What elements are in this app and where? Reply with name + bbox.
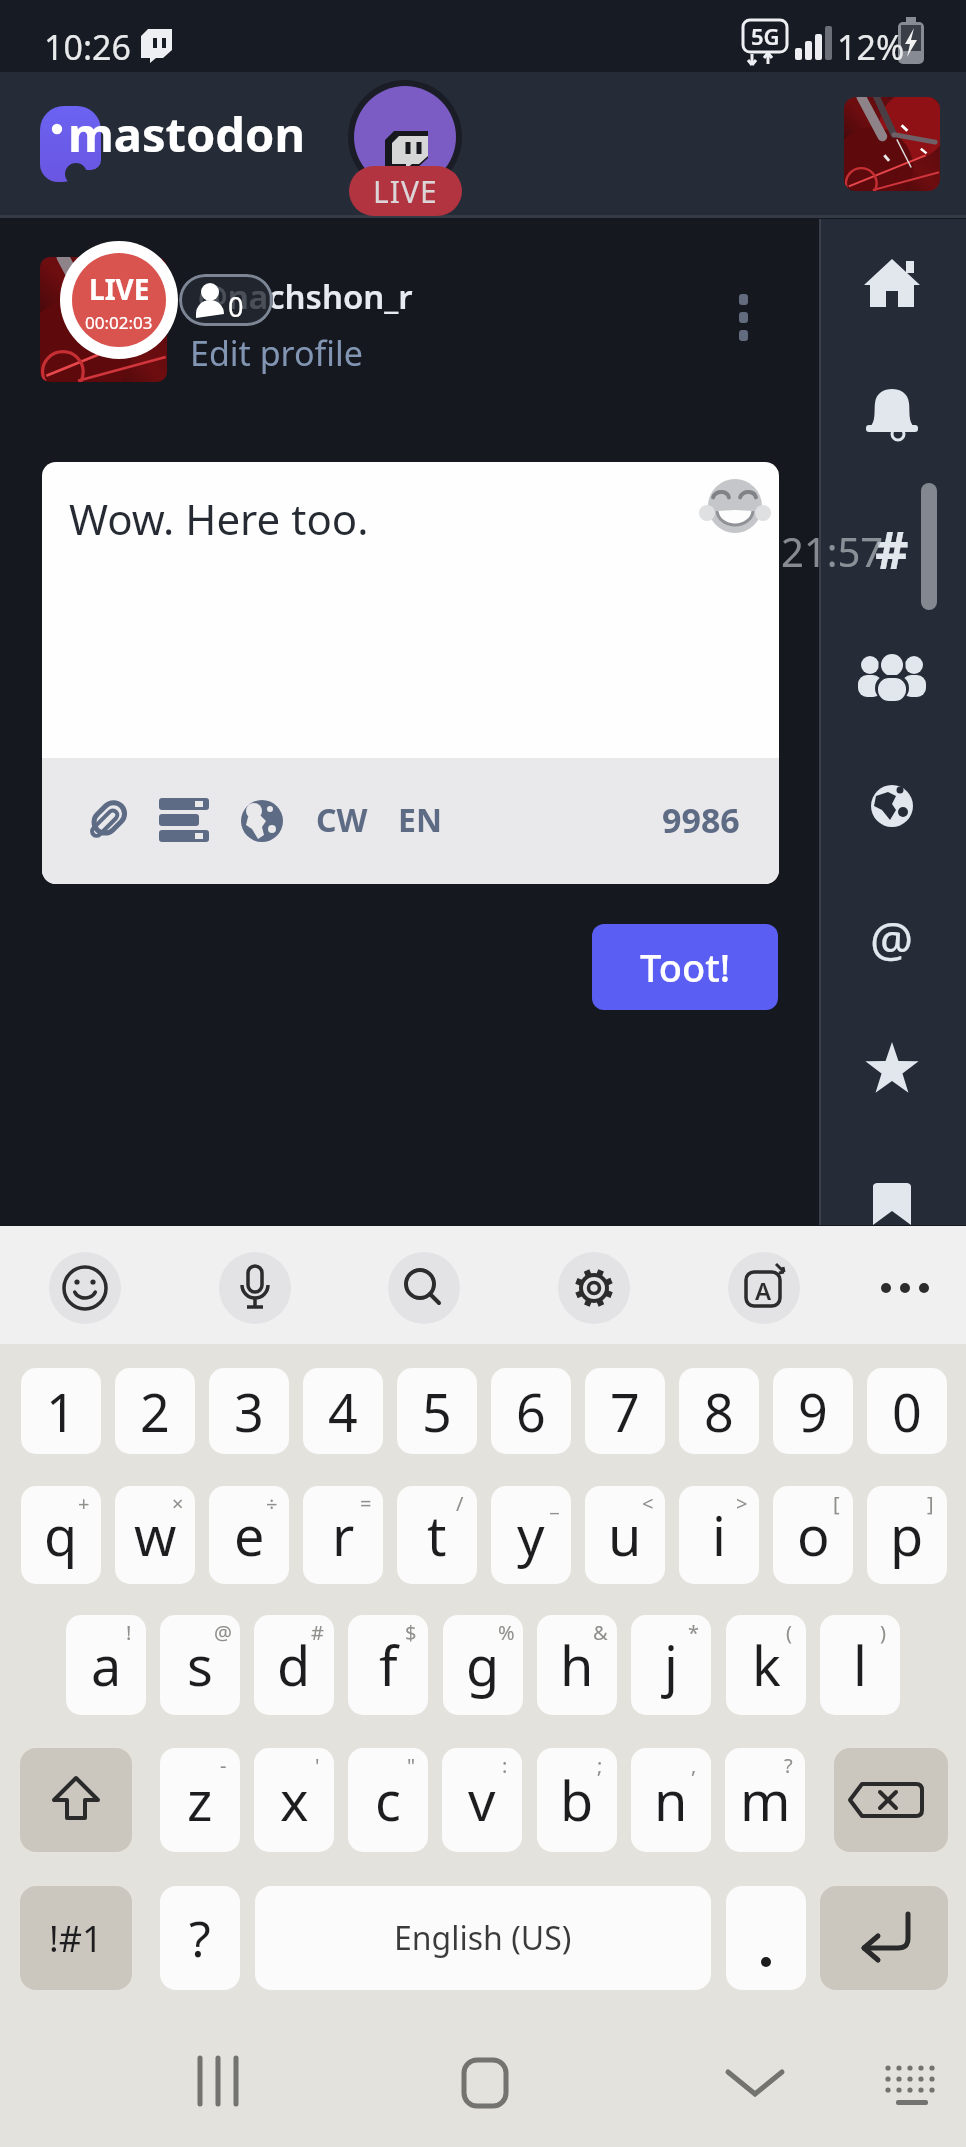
button[interactable]: Toot!: [592, 924, 778, 1010]
staticText: ': [315, 1752, 320, 1779]
button[interactable]: t: [397, 1486, 477, 1584]
button[interactable]: y: [491, 1486, 571, 1584]
button[interactable]: [820, 1886, 948, 1990]
button[interactable]: z: [160, 1748, 240, 1852]
staticText: v: [468, 1763, 496, 1837]
staticText: *: [688, 1619, 700, 1646]
button[interactable]: o: [773, 1486, 853, 1584]
button[interactable]: [690, 2030, 820, 2134]
button[interactable]: [420, 2030, 550, 2134]
button[interactable]: 9: [773, 1368, 853, 1454]
staticText: 9986: [662, 797, 740, 843]
button[interactable]: b: [537, 1748, 617, 1852]
button[interactable]: [862, 1042, 922, 1098]
button[interactable]: [219, 1252, 291, 1324]
button[interactable]: English (US): [255, 1886, 711, 1990]
button[interactable]: [150, 2030, 284, 2134]
staticText: ;: [597, 1752, 603, 1779]
button[interactable]: [852, 647, 932, 699]
button[interactable]: k: [726, 1615, 806, 1715]
button[interactable]: [728, 1252, 800, 1324]
button[interactable]: [20, 1748, 132, 1852]
button[interactable]: 2: [115, 1368, 195, 1454]
button[interactable]: !#1: [20, 1886, 132, 1990]
button[interactable]: [862, 387, 922, 439]
button[interactable]: 6: [491, 1368, 571, 1454]
button[interactable]: [40, 257, 167, 382]
button[interactable]: [844, 97, 940, 191]
button[interactable]: 1: [21, 1368, 101, 1454]
staticText: =: [360, 1490, 372, 1517]
button[interactable]: w: [115, 1486, 195, 1584]
button[interactable]: l: [820, 1615, 900, 1715]
button[interactable]: Edit profile: [190, 330, 363, 376]
button[interactable]: f: [348, 1615, 428, 1715]
button[interactable]: a: [66, 1615, 146, 1715]
staticText: u: [608, 1498, 642, 1572]
staticText: m: [740, 1763, 791, 1837]
button[interactable]: [388, 1252, 460, 1324]
button[interactable]: g: [443, 1615, 523, 1715]
button[interactable]: CW: [316, 798, 368, 842]
button[interactable]: p: [867, 1486, 947, 1584]
button[interactable]: 4: [303, 1368, 383, 1454]
staticText: 9: [798, 1376, 828, 1447]
staticText: a: [91, 1628, 122, 1702]
staticText: t: [427, 1498, 447, 1572]
staticText: $: [405, 1619, 417, 1646]
button[interactable]: j: [631, 1615, 711, 1715]
button[interactable]: [834, 1748, 948, 1852]
staticText: 4: [328, 1376, 358, 1447]
staticText: 12%: [837, 24, 905, 70]
button[interactable]: [852, 255, 932, 311]
button[interactable]: [873, 1183, 911, 1225]
button[interactable]: [726, 1886, 806, 1990]
button[interactable]: [727, 284, 761, 350]
button[interactable]: x: [254, 1748, 334, 1852]
button[interactable]: c: [348, 1748, 428, 1852]
button[interactable]: 3: [209, 1368, 289, 1454]
button[interactable]: n: [631, 1748, 711, 1852]
button[interactable]: [348, 80, 464, 216]
staticText: Edit profile: [190, 330, 363, 376]
button[interactable]: r: [303, 1486, 383, 1584]
staticText: English (US): [394, 1916, 572, 1960]
button[interactable]: 5: [397, 1368, 477, 1454]
button[interactable]: [49, 1252, 121, 1324]
button[interactable]: [157, 796, 211, 844]
staticText: #: [311, 1619, 324, 1646]
button[interactable]: [84, 794, 136, 846]
button[interactable]: LIVE: [349, 166, 462, 216]
staticText: b: [560, 1763, 594, 1837]
button[interactable]: 0: [867, 1368, 947, 1454]
staticText: CW: [316, 798, 368, 842]
staticText: %: [498, 1619, 515, 1646]
button[interactable]: d: [254, 1615, 334, 1715]
button[interactable]: u: [585, 1486, 665, 1584]
button[interactable]: m: [725, 1748, 805, 1852]
staticText: /: [456, 1490, 464, 1517]
button[interactable]: 7: [585, 1368, 665, 1454]
button[interactable]: v: [442, 1748, 522, 1852]
button[interactable]: [866, 780, 918, 832]
button[interactable]: [870, 2030, 960, 2134]
button[interactable]: [240, 799, 284, 843]
button[interactable]: s: [160, 1615, 240, 1715]
staticText: (: [786, 1619, 792, 1646]
staticText: k: [752, 1628, 781, 1702]
staticText: f: [379, 1628, 398, 1702]
button[interactable]: [558, 1252, 630, 1324]
staticText: x: [280, 1763, 309, 1837]
button[interactable]: e: [209, 1486, 289, 1584]
button[interactable]: q: [21, 1486, 101, 1584]
staticText: @nachshon_r: [198, 274, 413, 319]
button[interactable]: 8: [679, 1368, 759, 1454]
staticText: &: [593, 1619, 608, 1646]
staticText: !#1: [49, 1914, 103, 1963]
button[interactable]: EN: [398, 798, 442, 842]
staticText: [: [833, 1490, 840, 1517]
button[interactable]: i: [679, 1486, 759, 1584]
staticText: ): [880, 1619, 886, 1646]
button[interactable]: ?: [160, 1886, 240, 1990]
button[interactable]: h: [537, 1615, 617, 1715]
